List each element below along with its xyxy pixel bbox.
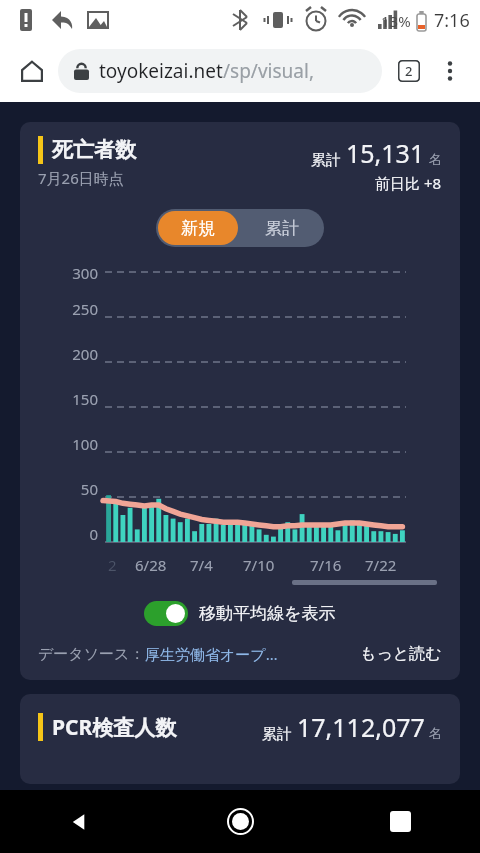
staticText: 13%: [381, 11, 411, 31]
staticText: /sp/visual,: [223, 58, 314, 84]
staticText: 2: [405, 62, 413, 80]
staticText: PCR検査人数: [52, 713, 177, 742]
staticText: 7:16: [434, 8, 470, 33]
staticText: 0: [89, 524, 98, 544]
button[interactable]: toyokeizai.net: [58, 49, 382, 93]
staticText: データソース：: [38, 645, 145, 664]
staticText: 名: [429, 725, 442, 741]
staticText: 死亡者数: [52, 137, 136, 163]
staticText: 累計: [311, 151, 341, 170]
staticText: 厚生労働省オープ…: [145, 644, 278, 664]
button[interactable]: 厚生労働省オープ…: [145, 644, 278, 664]
staticText: 15,131: [346, 136, 425, 170]
button[interactable]: 累計: [240, 209, 324, 247]
staticText: 6/28: [135, 555, 167, 575]
staticText: 7/4: [190, 555, 213, 575]
staticText: 累計: [265, 218, 299, 239]
staticText: 250: [72, 299, 98, 319]
button[interactable]: Tabs: 2: [388, 50, 430, 92]
button[interactable]: 移動平均線を表示: [140, 597, 340, 630]
staticText: 前日比 +8: [375, 173, 442, 193]
button[interactable]: もっと読む: [360, 644, 442, 664]
staticText: 7/16: [310, 555, 342, 575]
staticText: 累計: [262, 725, 292, 744]
staticText: 新規: [181, 218, 215, 239]
button[interactable]: More options: [430, 51, 470, 91]
staticText: 300: [72, 263, 98, 283]
staticText: 150: [72, 389, 98, 409]
button[interactable]: Back: [0, 790, 160, 853]
button[interactable]: Home: [160, 790, 320, 853]
staticText: 200: [72, 344, 98, 364]
staticText: 移動平均線を表示: [199, 603, 336, 624]
button[interactable]: 新規: [158, 211, 238, 245]
staticText: 名: [429, 151, 442, 167]
button[interactable]: Home: [10, 49, 54, 93]
staticText: 7/22: [365, 555, 397, 575]
staticText: 7月26日時点: [38, 168, 124, 188]
staticText: 7/10: [243, 555, 275, 575]
staticText: 50: [80, 479, 98, 499]
staticText: 17,112,077: [297, 710, 425, 744]
staticText: toyokeizai.net: [99, 58, 223, 84]
staticText: 2: [108, 555, 117, 575]
staticText: もっと読む: [360, 644, 442, 664]
staticText: 100: [72, 434, 98, 454]
button[interactable]: Recent apps: [320, 790, 480, 853]
